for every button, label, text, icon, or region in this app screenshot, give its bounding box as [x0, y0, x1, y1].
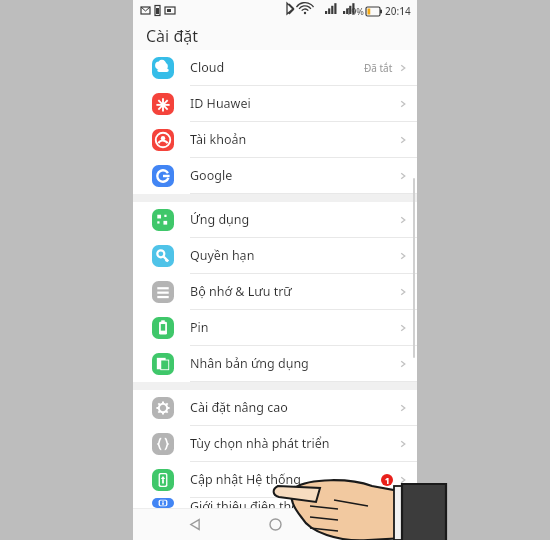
- button[interactable]: Ứng dụng: [133, 202, 417, 238]
- button[interactable]: Cloud: [133, 50, 417, 86]
- button[interactable]: Home: [256, 508, 294, 540]
- staticText: 20:14: [385, 4, 411, 18]
- button[interactable]: Tài khoản: [133, 122, 417, 158]
- staticText: Bộ nhớ & Lưu trữ: [190, 283, 398, 300]
- button[interactable]: Bộ nhớ & Lưu trữ: [133, 274, 417, 310]
- staticText: Giới thiệu điện thoại: [190, 498, 398, 508]
- staticText: 19%: [346, 5, 364, 17]
- staticText: Google: [190, 167, 398, 184]
- staticText: ID Huawei: [190, 95, 398, 112]
- staticText: Đã tắt: [364, 61, 393, 75]
- staticText: Cloud: [190, 59, 364, 76]
- button[interactable]: Pin: [133, 310, 417, 346]
- staticText: Ứng dụng: [190, 211, 398, 228]
- button[interactable]: Google: [133, 158, 417, 194]
- staticText: Nhân bản ứng dụng: [190, 355, 398, 372]
- staticText: Tài khoản: [190, 131, 398, 148]
- button[interactable]: Back: [176, 508, 214, 540]
- button[interactable]: Cập nhật Hệ thống: [133, 462, 417, 498]
- staticText: Pin: [190, 319, 398, 336]
- button[interactable]: Tùy chọn nhà phát triển: [133, 426, 417, 462]
- staticText: Quyền hạn: [190, 247, 398, 264]
- button[interactable]: Nhân bản ứng dụng: [133, 346, 417, 382]
- button[interactable]: Giới thiệu điện thoại: [133, 498, 417, 508]
- button[interactable]: ID Huawei: [133, 86, 417, 122]
- button[interactable]: Cài đặt nâng cao: [133, 390, 417, 426]
- staticText: Cập nhật Hệ thống: [190, 471, 381, 488]
- staticText: Tùy chọn nhà phát triển: [190, 435, 398, 452]
- staticText: Cài đặt: [146, 25, 199, 47]
- staticText: Cài đặt nâng cao: [190, 399, 398, 416]
- staticText: 1: [385, 475, 390, 486]
- button[interactable]: Recents: [337, 508, 375, 540]
- button[interactable]: Quyền hạn: [133, 238, 417, 274]
